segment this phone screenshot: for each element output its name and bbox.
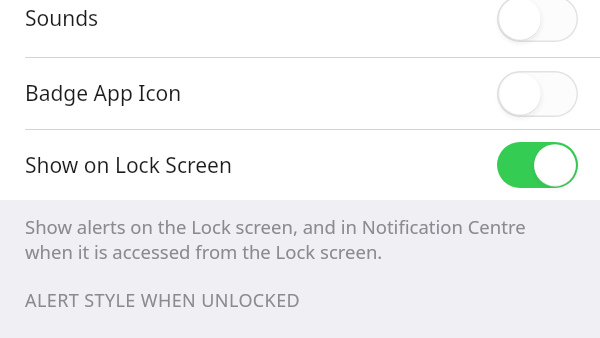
staticText: Sounds: [25, 4, 497, 33]
staticText: ALERT STYLE WHEN UNLOCKED: [25, 288, 301, 313]
button[interactable]: Sounds: [497, 0, 578, 42]
button[interactable]: Sounds: [0, 0, 600, 57]
button[interactable]: Show on Lock Screen: [0, 130, 600, 200]
button[interactable]: Show on Lock Screen: [497, 142, 578, 188]
button[interactable]: Badge App Icon: [497, 71, 578, 117]
staticText: Badge App Icon: [25, 79, 497, 108]
button[interactable]: Badge App Icon: [0, 58, 600, 129]
staticText: Show on Lock Screen: [25, 151, 497, 180]
staticText: Show alerts on the Lock screen, and in N…: [25, 214, 526, 265]
